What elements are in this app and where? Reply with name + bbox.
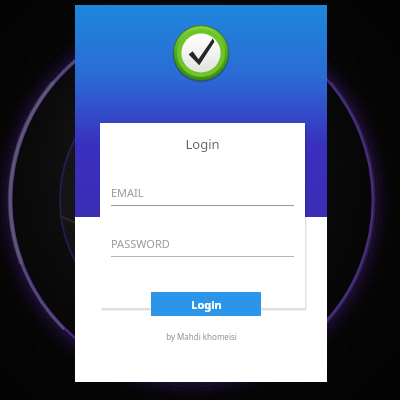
staticText: by Mahdi khomeisi xyxy=(166,331,237,342)
staticText: EMAIL xyxy=(111,185,144,200)
staticText: PASSWORD xyxy=(111,236,170,251)
staticText: Login xyxy=(191,297,222,312)
other: App logo xyxy=(173,25,229,81)
button[interactable]: EMAIL xyxy=(100,185,305,206)
staticText: Login xyxy=(185,135,220,153)
button[interactable]: Login xyxy=(151,292,261,316)
button[interactable]: PASSWORD xyxy=(100,236,305,257)
